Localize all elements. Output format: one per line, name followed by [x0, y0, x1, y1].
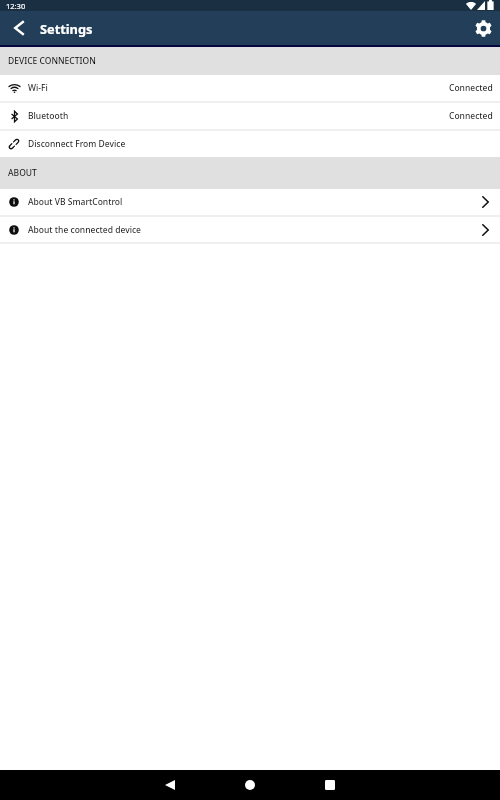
button[interactable]: Disconnect From Device: [0, 131, 500, 157]
button[interactable]: Recent apps: [307, 770, 353, 800]
staticText: About VB SmartControl: [28, 196, 123, 208]
button[interactable]: Back: [147, 770, 193, 800]
staticText: 12:30: [6, 1, 26, 11]
staticText: Disconnect From Device: [28, 138, 126, 150]
staticText: About the connected device: [28, 224, 142, 236]
staticText: Connected: [449, 110, 493, 122]
staticText: Settings: [40, 20, 93, 37]
staticText: Connected: [449, 82, 493, 94]
staticText: ABOUT: [8, 167, 37, 179]
button[interactable]: Wi-Fi: [0, 75, 500, 103]
button[interactable]: Bluetooth: [0, 103, 500, 131]
staticText: Wi-Fi: [28, 82, 48, 94]
staticText: DEVICE CONNECTION: [8, 55, 96, 67]
button[interactable]: Back: [5, 14, 33, 42]
staticText: Bluetooth: [28, 110, 69, 122]
button[interactable]: Home: [227, 770, 273, 800]
button[interactable]: About VB SmartControl: [0, 189, 500, 217]
button[interactable]: About the connected device: [0, 217, 500, 244]
button[interactable]: Settings: [470, 15, 496, 41]
